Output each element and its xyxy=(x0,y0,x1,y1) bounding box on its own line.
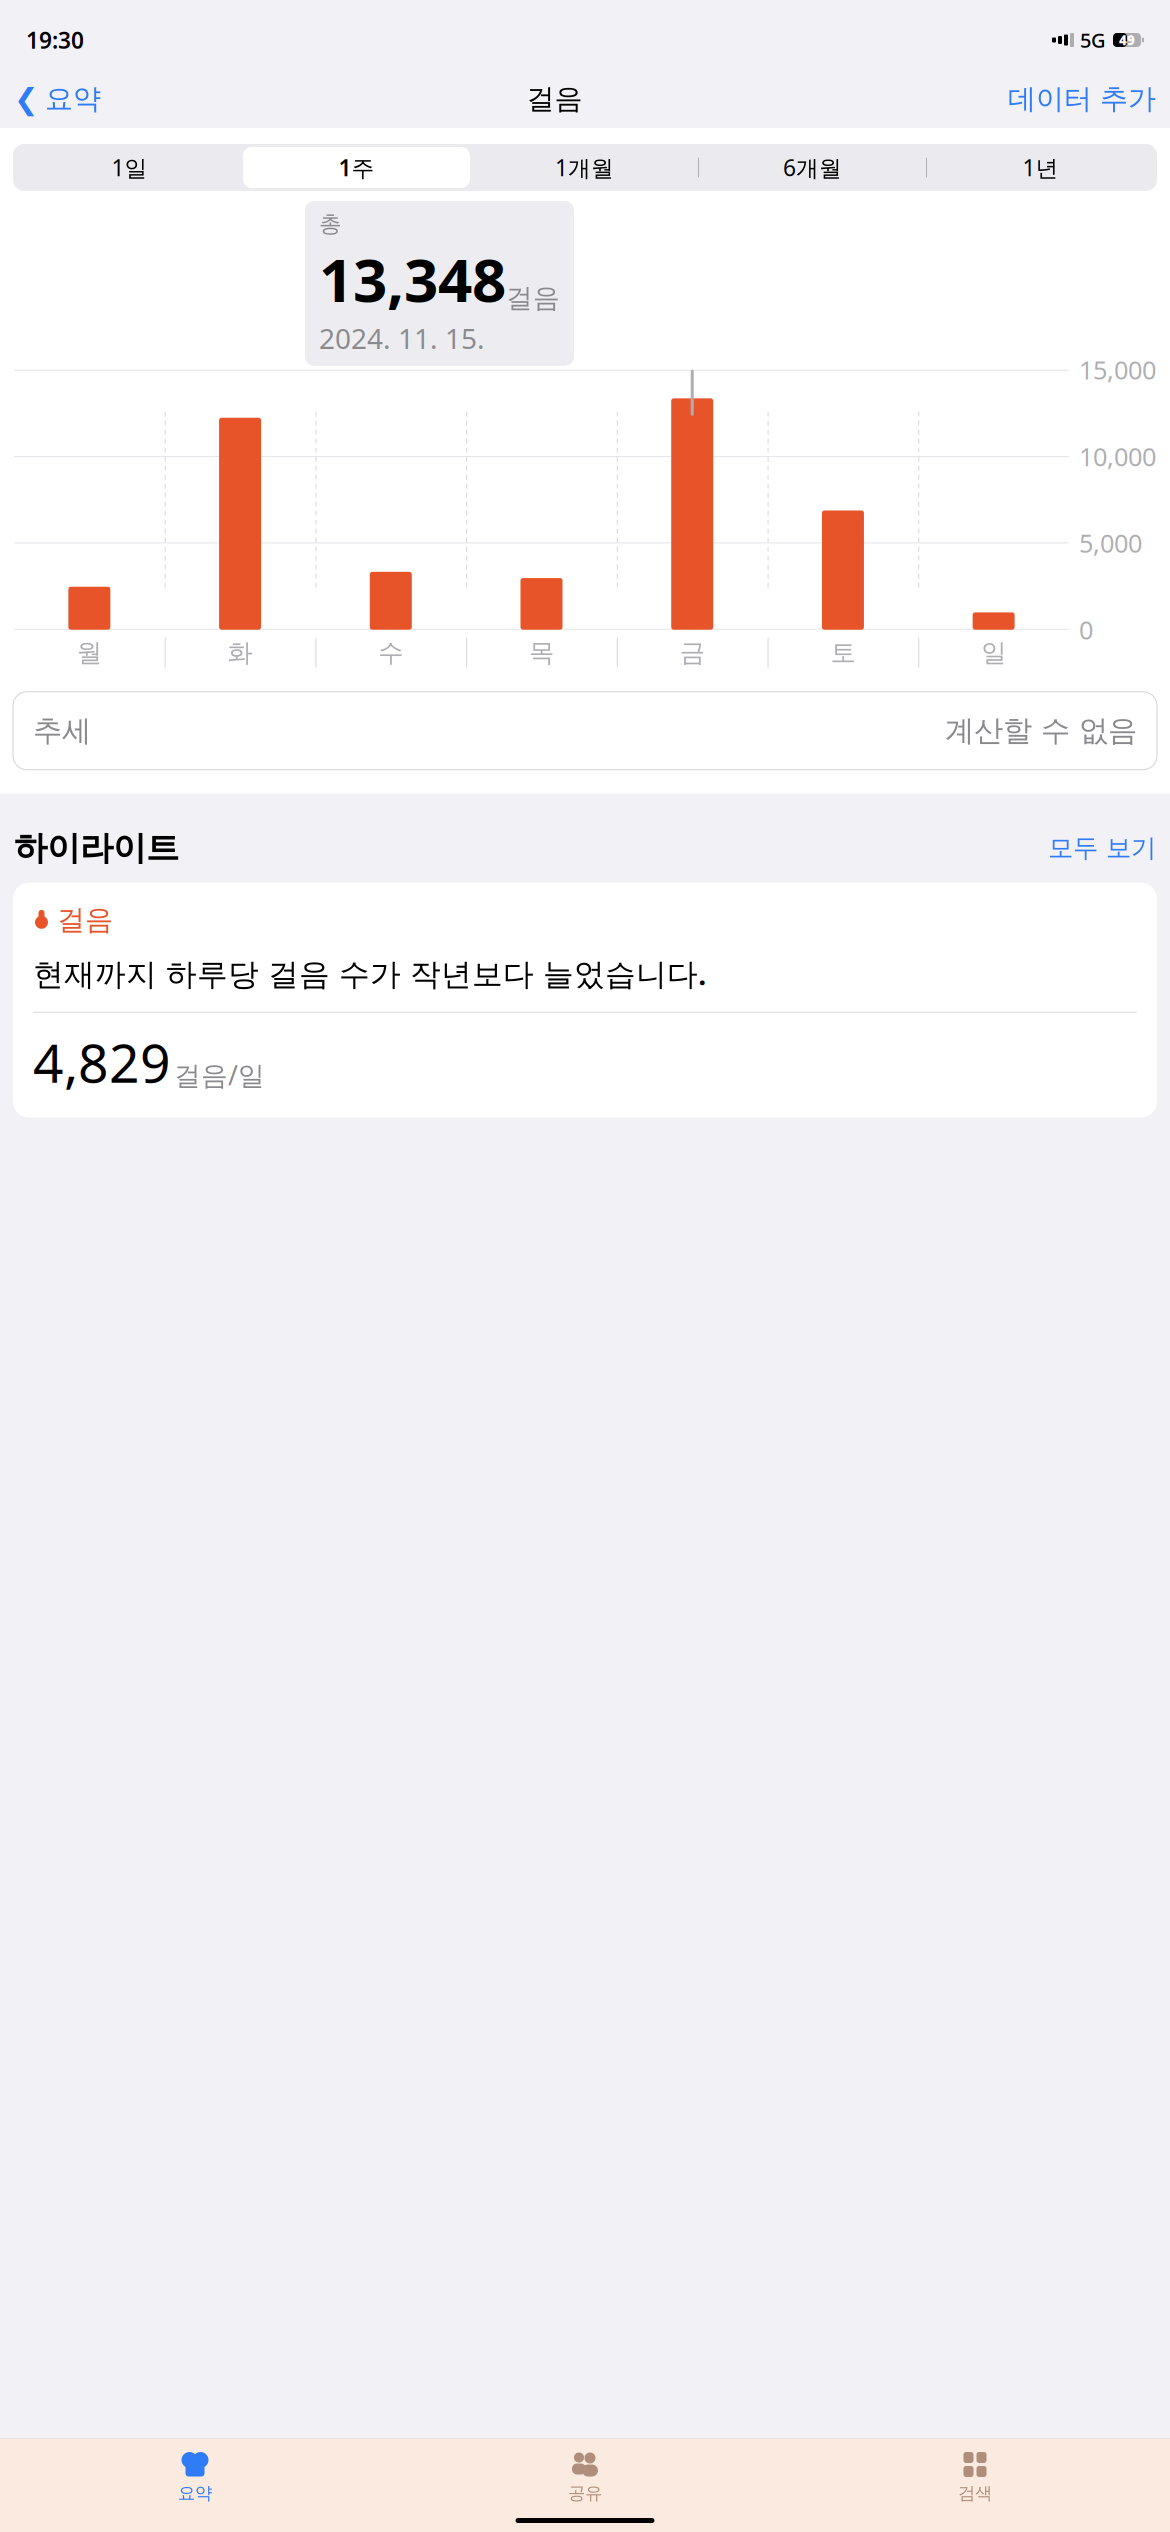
staticText: 1개월 xyxy=(555,152,614,182)
staticText: 13,348 xyxy=(319,239,506,318)
button[interactable]: 추세 xyxy=(13,692,1157,770)
button[interactable]: 1주 xyxy=(243,147,470,188)
staticText: 6개월 xyxy=(783,152,842,182)
staticText: 월 xyxy=(77,637,102,668)
staticText: 공유 xyxy=(568,2482,602,2504)
staticText: ❮ xyxy=(14,82,39,116)
staticText: 1주 xyxy=(338,152,374,182)
staticText: 수 xyxy=(378,637,403,668)
staticText: 4,829 xyxy=(33,1027,171,1098)
button[interactable]: 공유 xyxy=(390,2448,780,2506)
staticText: 요약 xyxy=(45,82,101,116)
button[interactable]: 모두 보기 xyxy=(1038,829,1156,868)
staticText: 일 xyxy=(981,637,1006,668)
staticText: 19:30 xyxy=(26,25,84,55)
staticText: 추세 xyxy=(33,713,91,749)
staticText: 0 xyxy=(1079,613,1093,646)
button[interactable]: 데이터 추가 xyxy=(1000,76,1156,122)
staticText: 걸음 xyxy=(57,903,113,937)
staticText: 화 xyxy=(228,637,253,668)
staticText: 모두 보기 xyxy=(1048,833,1156,864)
button[interactable]: 1년 xyxy=(927,147,1154,188)
staticText: 걸음 xyxy=(506,282,560,315)
staticText: 총 xyxy=(319,210,342,238)
staticText: 1년 xyxy=(1022,152,1058,182)
staticText: 5,000 xyxy=(1079,526,1142,560)
staticText: 계산할 수 없음 xyxy=(945,713,1137,749)
button[interactable]: 1일 xyxy=(16,147,243,188)
button[interactable]: 검색 xyxy=(780,2448,1170,2506)
button[interactable]: 1개월 xyxy=(471,147,698,188)
button[interactable]: 걸음 xyxy=(13,883,1157,1117)
staticText: 5G xyxy=(1080,27,1106,53)
staticText: 하이라이트 xyxy=(14,828,179,869)
button[interactable]: ❮ xyxy=(14,76,109,122)
staticText: 요약 xyxy=(178,2482,212,2504)
staticText: 걸음 xyxy=(526,82,582,116)
staticText: 걸음/일 xyxy=(174,1057,265,1093)
staticText: 토 xyxy=(830,637,855,668)
staticText: 49 xyxy=(1119,31,1135,49)
button[interactable]: 요약 xyxy=(0,2448,390,2506)
staticText: 2024. 11. 15. xyxy=(319,319,485,357)
staticText: 1일 xyxy=(111,152,147,182)
staticText: 목 xyxy=(529,637,554,668)
staticText: 검색 xyxy=(958,2482,992,2504)
staticText: 데이터 추가 xyxy=(1008,82,1156,116)
staticText: 현재까지 하루당 걸음 수가 작년보다 늘었습니다. xyxy=(33,953,706,994)
staticText: 금 xyxy=(680,637,705,668)
staticText: 10,000 xyxy=(1079,439,1156,473)
staticText: 15,000 xyxy=(1079,353,1156,386)
button[interactable]: 6개월 xyxy=(699,147,926,188)
